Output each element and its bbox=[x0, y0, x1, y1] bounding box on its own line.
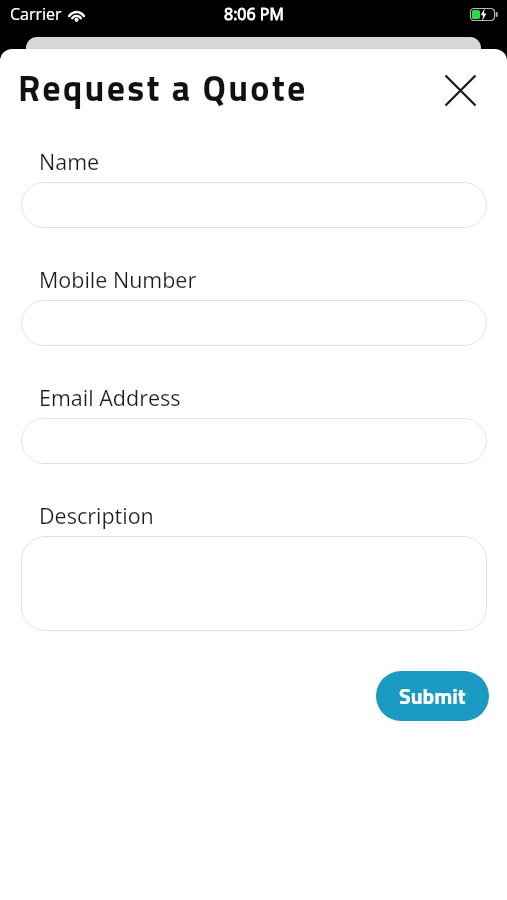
button[interactable] bbox=[21, 536, 487, 631]
staticText: Carrier bbox=[10, 3, 62, 25]
staticText: Name bbox=[39, 147, 100, 176]
staticText: Request a Quote bbox=[18, 60, 308, 115]
button[interactable] bbox=[21, 182, 487, 228]
button[interactable] bbox=[21, 418, 487, 464]
button[interactable] bbox=[21, 300, 487, 346]
staticText: Mobile Number bbox=[39, 265, 197, 294]
staticText: Email Address bbox=[39, 383, 181, 412]
staticText: 8:06 PM bbox=[224, 3, 284, 25]
button[interactable] bbox=[445, 75, 476, 106]
staticText: Description bbox=[39, 501, 154, 530]
button[interactable]: Submit bbox=[376, 671, 489, 721]
staticText: Submit bbox=[399, 680, 466, 713]
